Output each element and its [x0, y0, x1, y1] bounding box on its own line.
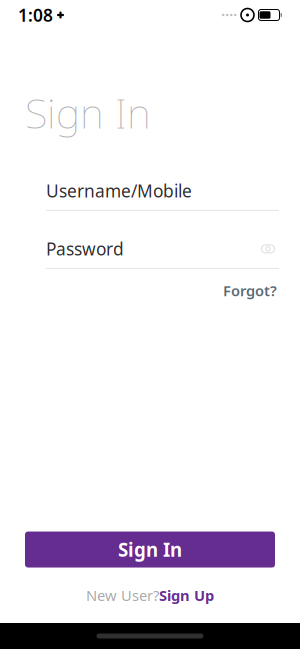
staticText: Forgot? — [223, 281, 277, 300]
staticText: Sign In — [118, 537, 182, 562]
button[interactable]: Show password — [257, 240, 279, 257]
staticText: Sign Up — [159, 585, 214, 605]
staticText: 1:08 — [18, 3, 53, 26]
staticText: Password — [46, 237, 124, 260]
staticText: New User? — [86, 585, 159, 605]
staticText: Username/Mobile — [46, 179, 192, 202]
button[interactable]: Sign In — [25, 531, 275, 567]
button[interactable]: Forgot? — [221, 277, 279, 304]
button[interactable]: New User? — [76, 579, 224, 611]
staticText: Sign In — [25, 85, 151, 140]
